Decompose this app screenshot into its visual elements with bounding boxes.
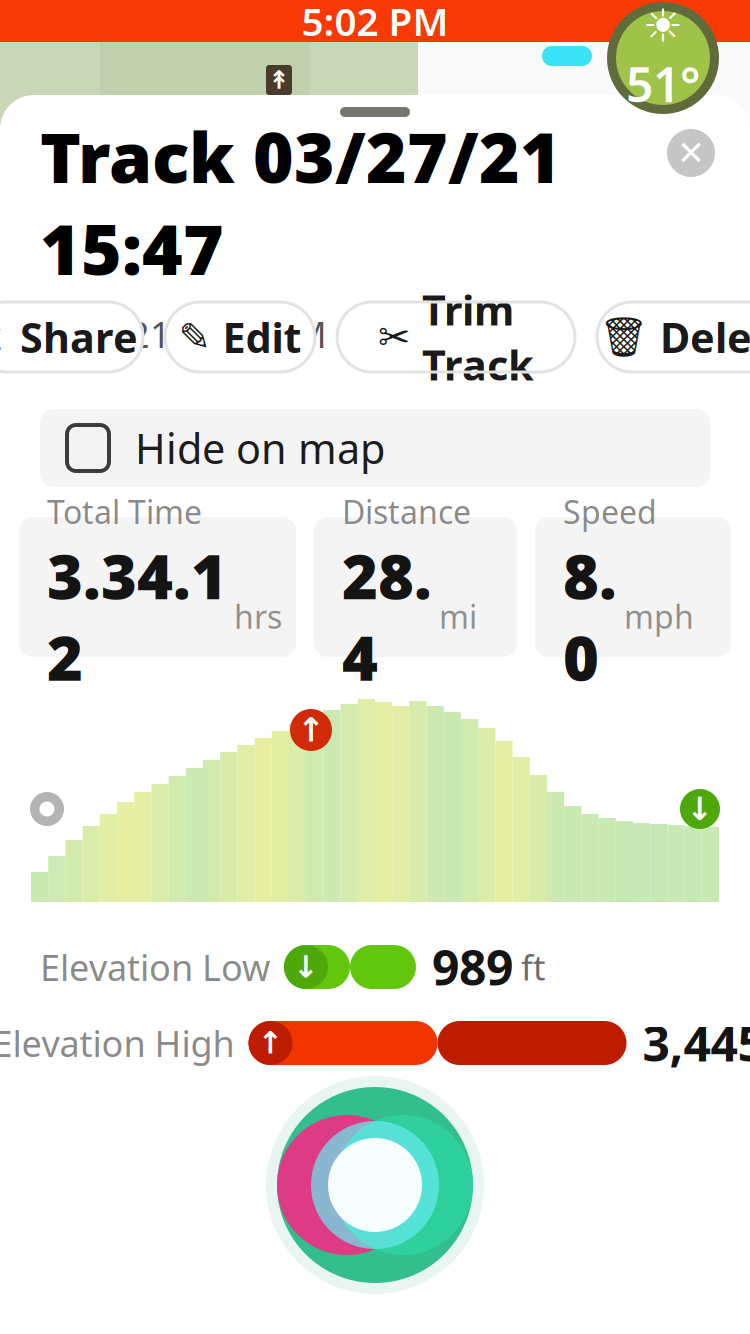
staticText: Track 03/27/21 15:47 — [40, 110, 561, 294]
staticText: ft — [521, 944, 546, 990]
staticText: 3/27/21, 3:47 PM — [40, 310, 327, 358]
staticText: ↓ — [293, 950, 319, 984]
staticText: 8.0 — [563, 535, 617, 698]
staticText: ↓ — [686, 791, 713, 827]
staticText: 3.34.12 — [47, 535, 227, 698]
staticText: Hide on map — [135, 421, 385, 475]
staticText: Delete — [660, 310, 750, 364]
staticText: ↑ — [257, 1026, 283, 1060]
staticText: ☀ — [642, 0, 683, 52]
staticText: hrs — [234, 595, 282, 637]
button[interactable]: Close — [667, 129, 715, 177]
staticText: ↑ — [297, 711, 325, 749]
staticText: 51° — [626, 52, 700, 116]
button[interactable]: Weather, 51 degrees, sunny — [607, 2, 719, 114]
staticText: 5:02 PM — [301, 0, 448, 47]
staticText: 3,445 — [642, 1011, 750, 1075]
staticText: mph — [624, 595, 694, 637]
button[interactable]: Hide on map — [40, 409, 710, 487]
staticText: Elevation High — [0, 1019, 234, 1067]
staticText: 🗑 — [599, 315, 648, 359]
staticText: Elevation Low — [40, 943, 270, 991]
staticText: ↥ — [0, 315, 8, 359]
staticText: mi — [439, 595, 477, 637]
staticText: Share — [20, 310, 138, 364]
staticText: ✕ — [677, 134, 705, 172]
staticText: Trim Track — [422, 282, 534, 392]
staticText: Edit — [222, 310, 301, 364]
button[interactable]: ✎ — [165, 302, 315, 372]
staticText: ✂ — [378, 315, 410, 359]
button[interactable]: ✂ — [337, 302, 575, 372]
button[interactable]: 🗑 — [597, 302, 750, 372]
staticText: Total Time — [47, 490, 202, 533]
staticText: ↟ — [268, 66, 289, 94]
staticText: Speed — [563, 490, 657, 533]
staticText: 28.4 — [342, 535, 432, 698]
staticText: 989 — [432, 935, 513, 999]
staticText: ✎ — [178, 315, 210, 359]
staticText: Distance — [342, 490, 471, 533]
button[interactable]: ↥ — [0, 302, 143, 372]
